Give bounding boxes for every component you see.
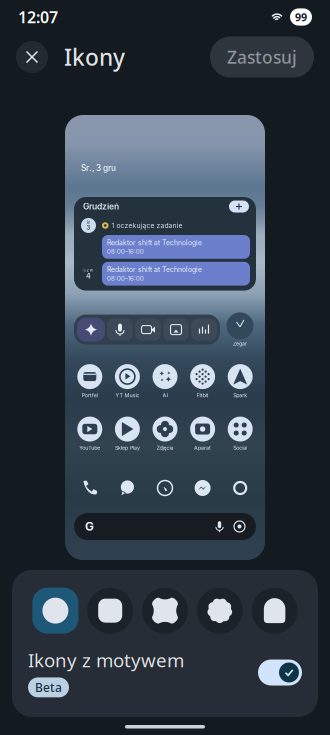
staticText: G [85, 519, 94, 534]
staticText: Ikony z motywem [28, 648, 184, 672]
staticText: AI [162, 392, 167, 399]
staticText: Fitbit [197, 392, 209, 399]
staticText: Ikony [64, 42, 125, 72]
staticText: Sklep Play [115, 444, 140, 451]
button[interactable]: Close [16, 41, 48, 73]
button[interactable]: Icon shape [192, 588, 247, 634]
staticText: Zastosuj [227, 45, 297, 68]
button[interactable]: Ikony z motywem toggle [258, 659, 302, 685]
staticText: Redaktor shift at Technologie [107, 238, 202, 247]
staticText: 99 [295, 10, 307, 24]
staticText: Zdjęcia [156, 444, 173, 451]
staticText: czw. [83, 267, 93, 273]
staticText: śr. [86, 220, 90, 225]
staticText: 3 [86, 224, 90, 231]
button[interactable]: Icon shape [247, 588, 302, 634]
button[interactable]: Zastosuj [210, 36, 314, 77]
button[interactable]: Icon shape [28, 588, 83, 634]
staticText: 1 oczekujące zadanie [111, 221, 182, 230]
staticText: YouTube [79, 444, 100, 451]
staticText: 08:00–16:00 [107, 248, 144, 255]
staticText: 12:07 [18, 6, 58, 28]
button[interactable]: Icon shape [83, 588, 138, 634]
staticText: YT Music [115, 392, 139, 399]
staticText: Grudzień [83, 201, 119, 212]
staticText: Beta [35, 679, 62, 695]
staticText: 4 [86, 272, 91, 280]
staticText: Redaktor shift at Technologie [107, 265, 202, 274]
staticText: Spark [233, 392, 247, 399]
staticText: 08:00–16:00 [107, 275, 144, 282]
staticText: Social [233, 444, 247, 451]
button[interactable]: Icon shape [138, 588, 192, 634]
staticText: Śr., 3 gru [81, 163, 116, 173]
staticText: Aparat [194, 444, 211, 451]
staticText: Portfel [82, 392, 98, 399]
staticText: Zegar [233, 340, 247, 347]
